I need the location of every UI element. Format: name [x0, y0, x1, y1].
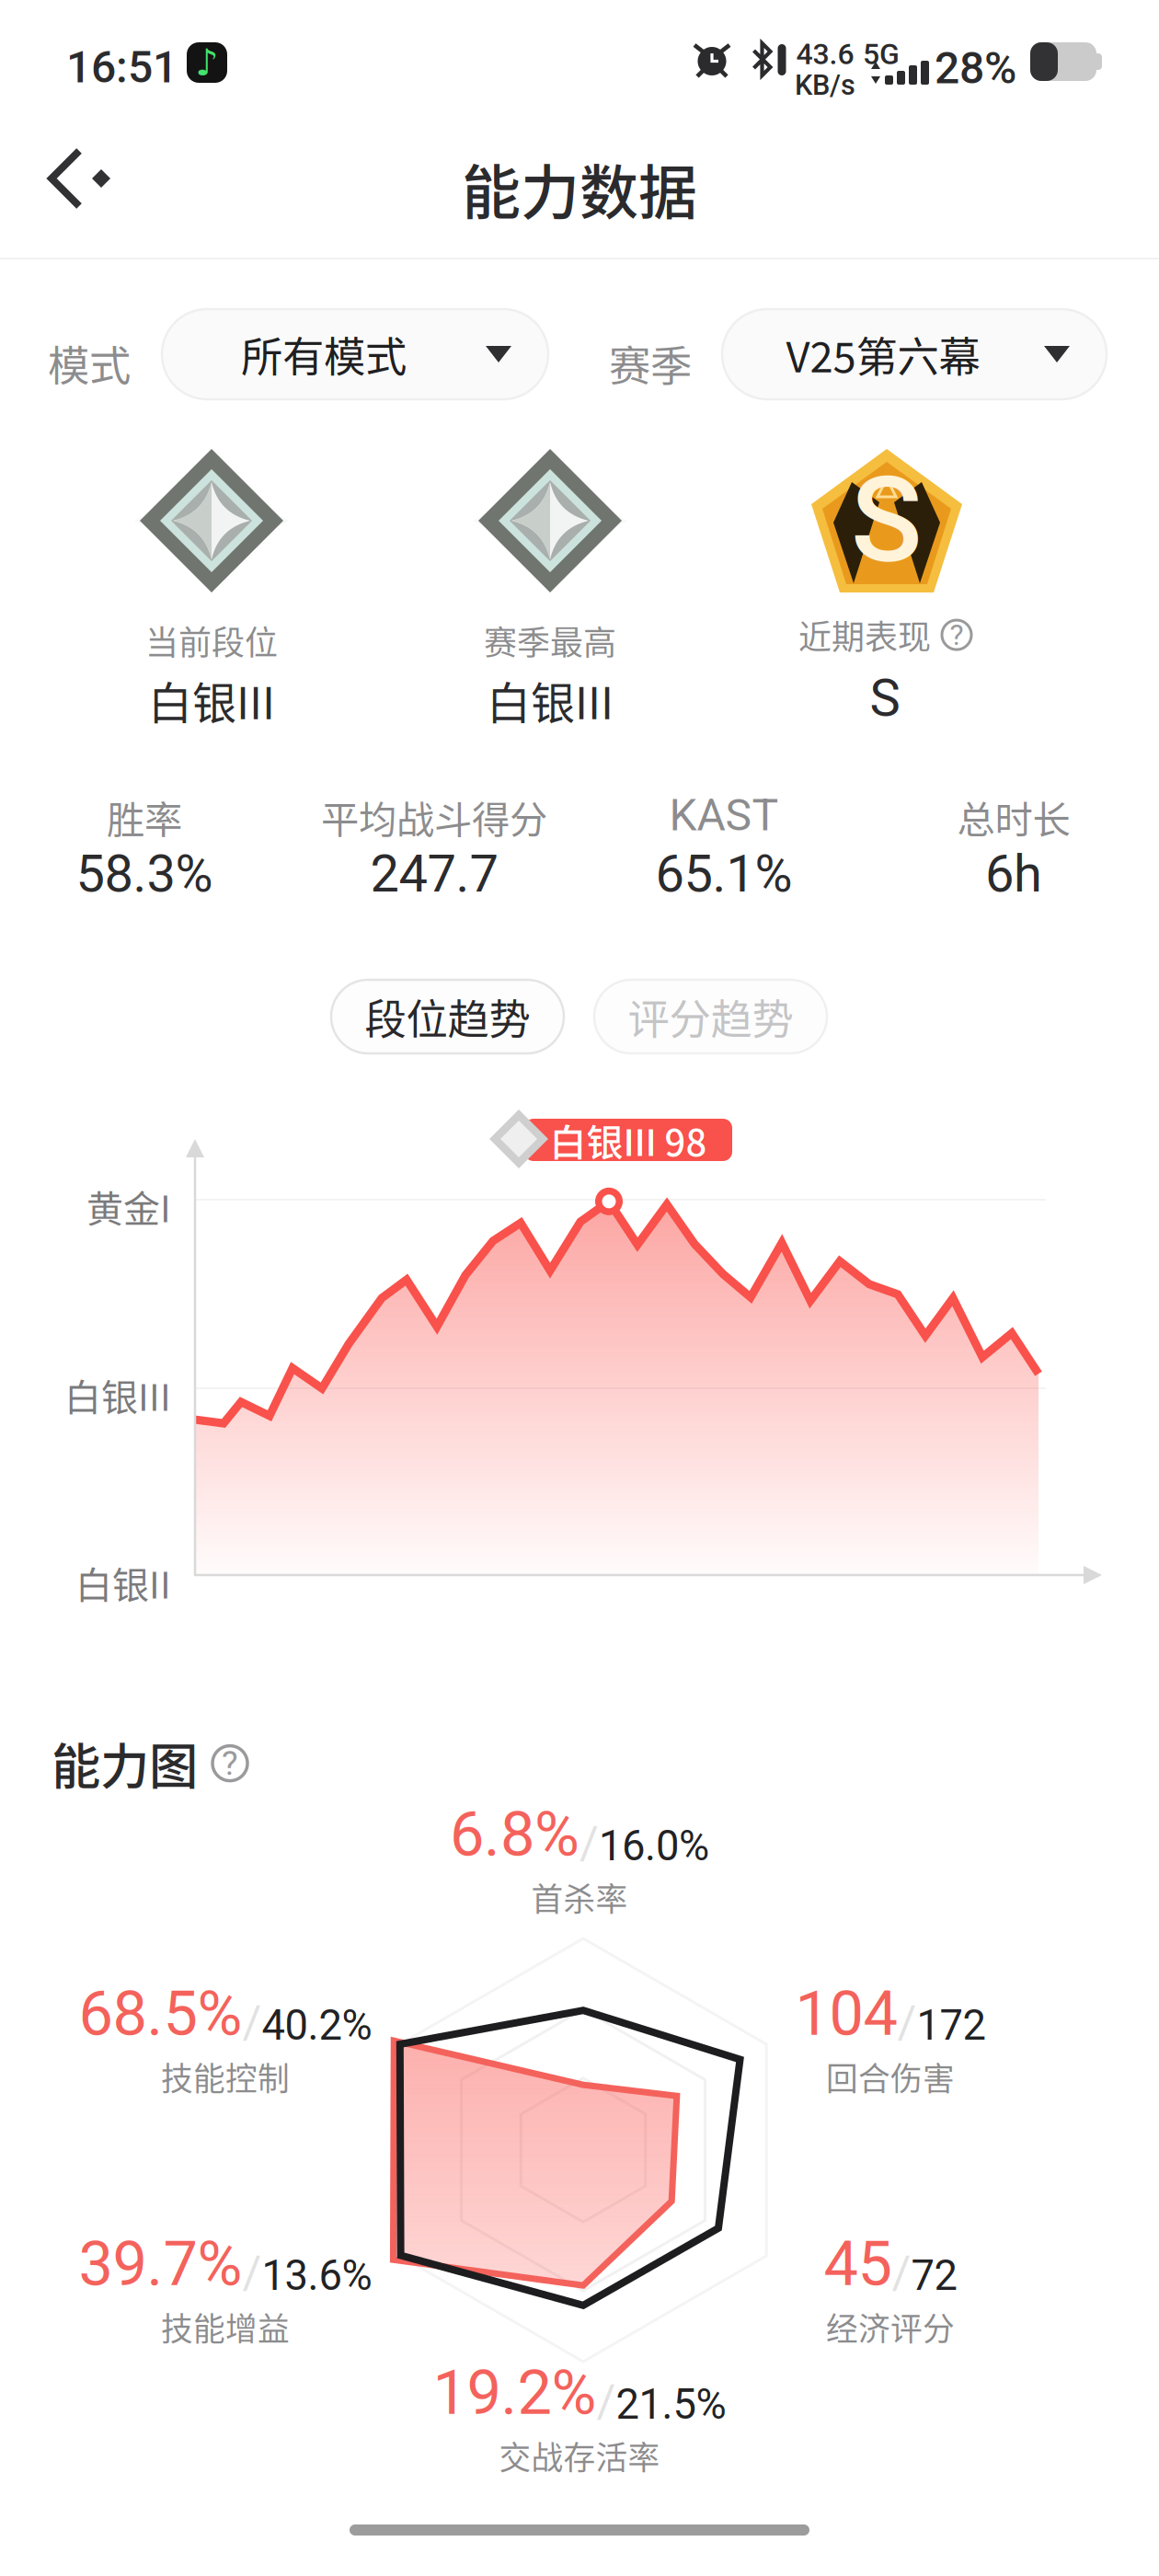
- button[interactable]: V25第六幕: [722, 309, 1107, 399]
- staticText: ?: [222, 1743, 238, 1783]
- staticText: 技能控制: [161, 2054, 290, 2100]
- staticText: ♪: [195, 41, 219, 84]
- staticText: KB/s: [795, 69, 855, 102]
- staticText: 28%: [935, 42, 1016, 94]
- staticText: 6h: [985, 844, 1042, 904]
- staticText: 评分趋势: [628, 986, 793, 1047]
- staticText: 21.5%: [616, 2380, 726, 2429]
- button[interactable]: 段位趋势: [331, 980, 564, 1053]
- staticText: 16.0%: [599, 1822, 709, 1870]
- staticText: 经济评分: [826, 2304, 955, 2350]
- staticText: S: [870, 668, 900, 728]
- staticText: 平均战斗得分: [321, 789, 547, 844]
- staticText: 赛季最高: [484, 616, 616, 664]
- staticText: 白银II: [75, 1556, 171, 1609]
- staticText: 回合伤害: [826, 2054, 955, 2100]
- staticText: 所有模式: [241, 324, 407, 384]
- staticText: 13.6%: [262, 2251, 372, 2300]
- staticText: 总时长: [957, 789, 1070, 844]
- staticText: S: [851, 452, 923, 590]
- staticText: /: [242, 2246, 262, 2300]
- staticText: 技能增益: [161, 2304, 290, 2350]
- staticText: 当前段位: [145, 616, 278, 664]
- staticText: 段位趋势: [365, 986, 530, 1047]
- staticText: /: [897, 1995, 917, 2050]
- staticText: 39.7%: [79, 2228, 242, 2300]
- staticText: 白银III: [64, 1368, 171, 1421]
- staticText: 5G: [863, 37, 900, 71]
- staticText: 58.3%: [76, 844, 213, 904]
- button[interactable]: 所有模式: [162, 309, 548, 399]
- staticText: 68.5%: [79, 1978, 242, 2050]
- staticText: 16:51: [66, 41, 178, 93]
- staticText: 能力数据: [462, 145, 697, 231]
- staticText: ?: [950, 618, 964, 652]
- staticText: 19.2%: [433, 2357, 597, 2429]
- staticText: 能力图: [52, 1728, 198, 1799]
- staticText: /: [597, 2374, 616, 2429]
- staticText: 40.2%: [262, 2001, 372, 2050]
- staticText: 白银III: [487, 668, 614, 732]
- staticText: 104: [795, 1978, 897, 2050]
- button[interactable]: Back: [33, 134, 132, 223]
- staticText: 45: [824, 2228, 892, 2300]
- staticText: V25第六幕: [786, 324, 980, 384]
- staticText: 赛季: [609, 333, 692, 393]
- staticText: 43.6: [796, 37, 854, 71]
- staticText: 6.8%: [450, 1799, 579, 1870]
- staticText: 近期表现: [798, 611, 931, 659]
- staticText: 胜率: [107, 789, 182, 844]
- staticText: KAST: [669, 789, 779, 841]
- staticText: 247.7: [370, 844, 498, 904]
- staticText: 白银III 98: [550, 1113, 707, 1166]
- staticText: 交战存活率: [499, 2433, 660, 2479]
- staticText: 白银III: [148, 668, 275, 732]
- button[interactable]: 评分趋势: [594, 980, 827, 1053]
- staticText: /: [242, 1995, 262, 2050]
- staticText: 模式: [48, 333, 131, 393]
- staticText: 72: [911, 2251, 957, 2300]
- staticText: 65.1%: [655, 844, 792, 904]
- staticText: 172: [917, 2001, 986, 2050]
- staticText: /: [579, 1816, 599, 1871]
- staticText: 首杀率: [531, 1874, 628, 1920]
- staticText: 黄金I: [86, 1179, 171, 1233]
- staticText: /: [892, 2246, 911, 2300]
